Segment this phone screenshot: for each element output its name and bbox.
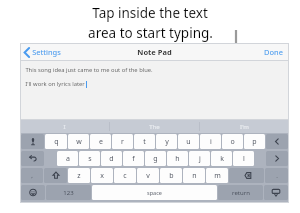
- button[interactable]: h: [167, 151, 188, 166]
- button[interactable]: Settings: [20, 47, 65, 57]
- button[interactable]: 123: [46, 185, 91, 200]
- button[interactable]: I'm: [200, 120, 289, 133]
- staticText: l: [243, 154, 245, 164]
- button[interactable]: Dictate: [21, 134, 44, 149]
- staticText: o: [230, 137, 235, 147]
- button[interactable]: t: [134, 134, 155, 149]
- button[interactable]: p: [244, 134, 265, 149]
- staticText: I'll work on lyrics later: [25, 80, 85, 88]
- button[interactable]: Shift: [44, 168, 67, 183]
- staticText: g: [153, 154, 158, 164]
- button[interactable]: w: [68, 134, 89, 149]
- staticText: q: [54, 137, 59, 147]
- button[interactable]: return: [218, 185, 263, 200]
- staticText: w: [76, 137, 82, 147]
- button[interactable]: b: [160, 168, 182, 183]
- button[interactable]: q: [45, 134, 67, 149]
- staticText: i: [210, 137, 212, 147]
- staticText: d: [109, 154, 114, 164]
- button[interactable]: Next: [266, 151, 288, 166]
- staticText: Note Pad: [137, 47, 172, 57]
- staticText: I'm: [240, 123, 249, 131]
- staticText: m: [214, 171, 221, 181]
- button[interactable]: Done: [258, 44, 289, 60]
- staticText: The: [149, 123, 160, 131]
- staticText: p: [252, 137, 257, 147]
- button[interactable]: The: [110, 120, 199, 133]
- staticText: j: [199, 154, 201, 164]
- button[interactable]: This song idea just came to me out of th…: [20, 61, 289, 119]
- button[interactable]: Undo: [21, 151, 44, 166]
- staticText: a: [66, 154, 70, 164]
- staticText: u: [186, 137, 191, 147]
- staticText: b: [169, 171, 174, 181]
- button[interactable]: Emoji: [21, 185, 45, 200]
- button[interactable]: i: [200, 134, 221, 149]
- button[interactable]: Backspace: [229, 168, 264, 183]
- button[interactable]: r: [112, 134, 133, 149]
- staticText: s: [88, 154, 92, 164]
- button[interactable]: c: [114, 168, 136, 183]
- staticText: x: [100, 171, 104, 181]
- button[interactable]: a: [57, 151, 78, 166]
- button[interactable]: f: [123, 151, 144, 166]
- staticText: Settings: [32, 47, 61, 57]
- staticText: r: [121, 137, 124, 147]
- staticText: t: [143, 137, 146, 147]
- staticText: ,: [31, 172, 33, 180]
- staticText: c: [123, 171, 127, 181]
- staticText: Tap inside the text: [92, 4, 208, 22]
- button[interactable]: s: [79, 151, 100, 166]
- staticText: z: [77, 171, 81, 181]
- staticText: y: [165, 137, 169, 147]
- button[interactable]: u: [178, 134, 199, 149]
- staticText: k: [220, 154, 224, 164]
- button[interactable]: Hide keyboard: [264, 185, 288, 200]
- staticText: v: [146, 171, 150, 181]
- button[interactable]: d: [101, 151, 122, 166]
- staticText: h: [175, 154, 180, 164]
- staticText: e: [99, 137, 103, 147]
- button[interactable]: space: [92, 185, 217, 200]
- staticText: area to start typing.: [88, 24, 213, 42]
- staticText: I: [63, 123, 66, 131]
- button[interactable]: o: [222, 134, 243, 149]
- button[interactable]: j: [189, 151, 210, 166]
- staticText: 123: [63, 189, 74, 197]
- button[interactable]: v: [137, 168, 159, 183]
- staticText: n: [192, 171, 197, 181]
- button[interactable]: l: [233, 151, 254, 166]
- button[interactable]: Previous: [266, 134, 288, 149]
- staticText: f: [132, 154, 135, 164]
- staticText: Done: [264, 47, 283, 57]
- staticText: This song idea just came to me out of th…: [25, 66, 153, 74]
- button[interactable]: e: [90, 134, 111, 149]
- button[interactable]: y: [156, 134, 177, 149]
- button[interactable]: k: [211, 151, 232, 166]
- button[interactable]: g: [145, 151, 166, 166]
- button[interactable]: x: [91, 168, 113, 183]
- staticText: space: [147, 189, 162, 196]
- staticText: return: [232, 189, 250, 197]
- button[interactable]: n: [183, 168, 205, 183]
- staticText: .: [276, 172, 278, 180]
- button[interactable]: m: [206, 168, 228, 183]
- button[interactable]: z: [68, 168, 90, 183]
